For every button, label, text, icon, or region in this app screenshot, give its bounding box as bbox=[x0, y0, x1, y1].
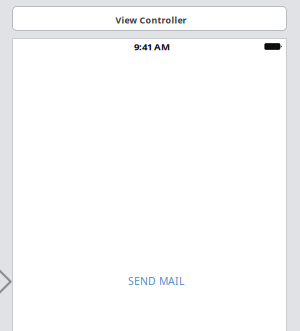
button[interactable]: View Controller bbox=[12, 6, 287, 31]
staticText: View Controller bbox=[115, 14, 186, 26]
staticText: SEND MAIL bbox=[128, 274, 184, 288]
button[interactable]: SEND MAIL bbox=[128, 274, 184, 288]
staticText: 9:41 AM bbox=[134, 40, 170, 53]
